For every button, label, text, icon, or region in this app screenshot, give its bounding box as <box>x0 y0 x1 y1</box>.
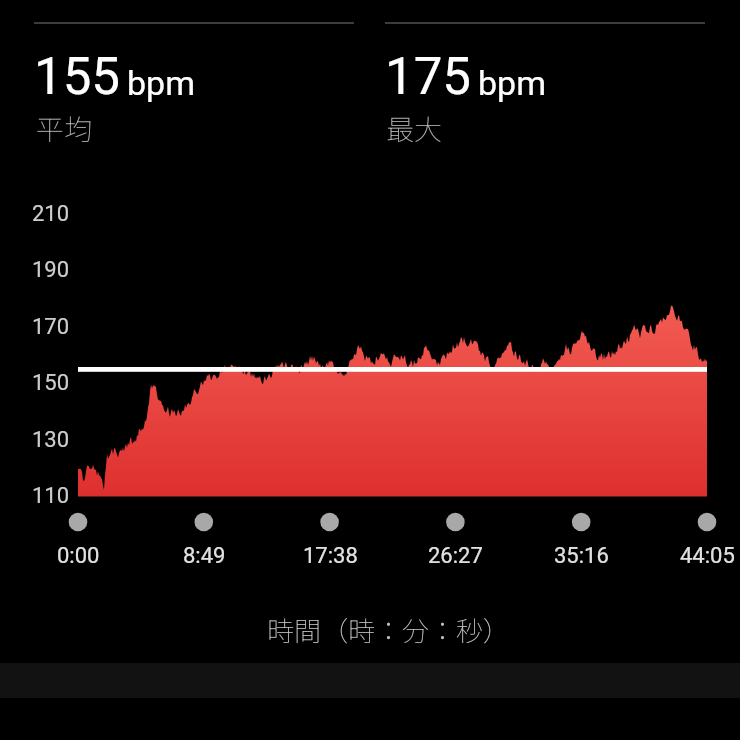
staticText: 110 <box>32 483 70 509</box>
staticText: 155 <box>34 47 120 107</box>
staticText: bpm <box>127 63 195 103</box>
staticText: 130 <box>32 427 70 453</box>
staticText: 時間（時：分：秒） <box>267 610 510 649</box>
staticText: 最大 <box>386 108 443 149</box>
button[interactable]: 155 <box>34 47 195 107</box>
staticText: 170 <box>32 314 70 340</box>
staticText: 8:49 <box>183 543 226 569</box>
staticText: 26:27 <box>428 543 483 569</box>
staticText: 35:16 <box>554 543 609 569</box>
staticText: bpm <box>478 63 546 103</box>
staticText: 175 <box>385 47 471 107</box>
button[interactable]: 175 <box>385 47 546 107</box>
staticText: 平均 <box>36 108 93 149</box>
button[interactable] <box>0 0 740 740</box>
staticText: 0:00 <box>57 543 100 569</box>
staticText: 150 <box>32 370 70 396</box>
staticText: 210 <box>32 201 70 227</box>
staticText: 190 <box>32 257 70 283</box>
staticText: 17:38 <box>303 543 358 569</box>
staticText: 44:05 <box>680 543 735 569</box>
